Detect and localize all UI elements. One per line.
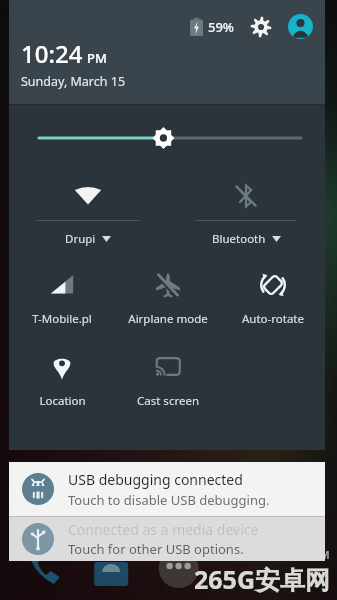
staticText: USB debugging connected (68, 470, 243, 489)
staticText: Connected as a media device (68, 520, 259, 539)
button[interactable]: USB debugging connected (9, 462, 325, 516)
button[interactable]: User profile (288, 14, 313, 39)
staticText: Bluetooth (212, 231, 266, 247)
staticText: Touch for other USB options. (68, 540, 244, 558)
staticText: Drupi (65, 231, 96, 247)
other: Cast screen (154, 353, 182, 381)
other: Airplane mode (154, 271, 182, 299)
staticText: 265G安卓网 (194, 562, 331, 596)
staticText: Location (39, 393, 86, 409)
staticText: Cast screen (137, 393, 199, 409)
button[interactable]: Auto rotate (220, 257, 325, 339)
button[interactable]: Bluetooth (167, 171, 325, 257)
button[interactable]: Cast screen (115, 339, 220, 421)
other: Auto rotate (259, 271, 287, 299)
staticText: PM (87, 49, 107, 67)
staticText: Sunday, March 15 (21, 73, 126, 90)
button[interactable]: Connected as a media device (9, 516, 325, 561)
button[interactable]: Airplane mode (115, 257, 220, 339)
button[interactable]: Wi-Fi (9, 171, 167, 257)
button[interactable] (9, 105, 325, 171)
staticText: Touch to disable USB debugging. (68, 491, 270, 509)
other: Bluetooth (231, 181, 261, 211)
staticText: ANDROID.265G.COM (212, 547, 331, 562)
staticText: Airplane mode (128, 311, 208, 327)
other: Mobile signal (48, 271, 76, 299)
button[interactable]: Settings (250, 16, 272, 38)
staticText: 10:24 (21, 37, 83, 70)
button[interactable]: Battery charging (190, 18, 203, 36)
staticText: Auto-rotate (242, 311, 304, 327)
button[interactable]: Location (9, 339, 115, 421)
other: Location (48, 353, 76, 381)
staticText: 59% (208, 18, 234, 36)
button[interactable]: Mobile signal (9, 257, 115, 339)
staticText: T-Mobile.pl (32, 311, 92, 327)
other: Wi-Fi (73, 181, 103, 211)
